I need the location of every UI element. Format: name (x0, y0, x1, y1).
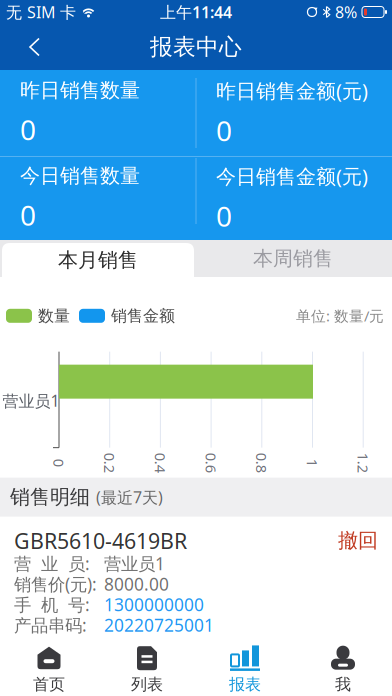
staticText: 首页 (33, 675, 65, 694)
staticText: 昨日销售金额(元) (216, 77, 368, 104)
staticText: 报表中心 (150, 33, 242, 61)
button[interactable]: 列表 (98, 646, 196, 694)
button[interactable]: 我 (294, 646, 392, 694)
staticText: 8000.00 (104, 572, 169, 595)
button[interactable]: 报表 (196, 646, 294, 694)
staticText: 0.4 (150, 453, 170, 472)
staticText: 营业员1 (104, 552, 165, 575)
staticText: 20220725001 (104, 613, 214, 636)
staticText: 0 (216, 112, 232, 149)
staticText: 本月销售 (58, 248, 138, 272)
staticText: 无 SIM 卡 (6, 1, 76, 23)
staticText: 0 (55, 453, 63, 472)
staticText: 报表 (229, 675, 261, 694)
staticText: 本周销售 (253, 246, 333, 271)
staticText: 撤回 (338, 528, 378, 553)
button[interactable]: 撤回 (338, 528, 392, 553)
staticText: 我 (335, 675, 351, 694)
staticText: 0 (20, 111, 36, 148)
staticText: 列表 (131, 675, 163, 694)
staticText: 手 机 号: (14, 593, 90, 616)
staticText: (最近7天) (96, 486, 163, 508)
staticText: 1 (308, 453, 316, 472)
staticText: 今日销售数量 (20, 164, 140, 188)
staticText: 数量 (38, 306, 70, 326)
staticText: 上午11:44 (160, 1, 232, 23)
staticText: 单位: 数量/元 (296, 306, 384, 326)
staticText: GBR5610-4619BR (14, 526, 187, 555)
button[interactable]: 本月销售 (0, 240, 194, 277)
staticText: 1.2 (353, 453, 373, 472)
staticText: 0.6 (201, 453, 221, 472)
staticText: 产品串码: (14, 613, 87, 636)
staticText: 0 (20, 196, 36, 233)
button[interactable]: 首页 (0, 646, 98, 694)
staticText: 8% (335, 1, 357, 23)
button[interactable]: 本周销售 (194, 240, 392, 277)
staticText: 1300000000 (104, 593, 204, 616)
staticText: 销售金额 (111, 306, 175, 326)
staticText: 今日销售金额(元) (216, 163, 368, 189)
staticText: 销售价(元): (14, 572, 97, 595)
staticText: 0.2 (100, 453, 120, 472)
staticText: 销售明细 (10, 485, 96, 509)
staticText: 0 (216, 197, 232, 234)
button[interactable]: Back (0, 24, 54, 70)
staticText: 昨日销售数量 (20, 78, 140, 103)
staticText: 0.8 (252, 453, 272, 472)
staticText: 营 业 员: (14, 552, 90, 575)
staticText: 营业员1 (2, 390, 59, 411)
